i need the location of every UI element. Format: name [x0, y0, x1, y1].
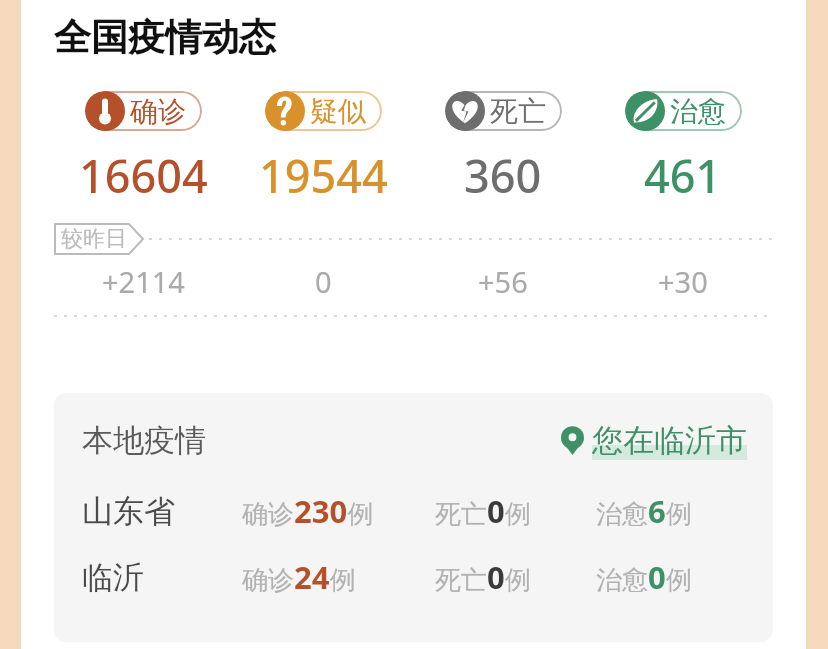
staticText: 360: [464, 145, 542, 206]
staticText: 治愈6例: [596, 490, 692, 532]
staticText: 山东省: [82, 492, 175, 531]
button[interactable]: 确诊: [85, 91, 202, 131]
staticText: 16604: [79, 145, 208, 206]
staticText: 治愈0例: [596, 556, 692, 598]
button[interactable]: 本地疫情: [54, 393, 773, 642]
other: Your location: [561, 426, 584, 455]
staticText: 确诊230例: [242, 490, 374, 532]
staticText: 死亡0例: [435, 556, 531, 598]
button[interactable]: 临沂: [82, 556, 757, 598]
staticText: 461: [644, 145, 722, 206]
staticText: 治愈: [670, 94, 726, 129]
button[interactable]: 山东省: [82, 490, 757, 532]
staticText: 确诊: [130, 94, 186, 129]
staticText: +56: [478, 262, 528, 301]
staticText: 本地疫情: [82, 421, 206, 460]
button[interactable]: 死亡: [445, 91, 562, 131]
staticText: +2114: [102, 262, 185, 301]
button[interactable]: 治愈: [625, 91, 742, 131]
staticText: 临沂: [82, 558, 144, 597]
staticText: 较昨日: [61, 225, 127, 253]
staticText: 死亡: [490, 94, 546, 129]
staticText: +30: [658, 262, 708, 301]
staticText: 确诊24例: [242, 556, 356, 598]
button[interactable]: Your location: [561, 421, 747, 460]
staticText: 0: [315, 262, 332, 301]
staticText: 19544: [259, 145, 388, 206]
staticText: 您在临沂市: [592, 421, 747, 460]
staticText: 死亡0例: [435, 490, 531, 532]
button[interactable]: 疑似: [265, 91, 382, 131]
staticText: 全国疫情动态: [54, 14, 276, 61]
staticText: 疑似: [310, 94, 366, 129]
